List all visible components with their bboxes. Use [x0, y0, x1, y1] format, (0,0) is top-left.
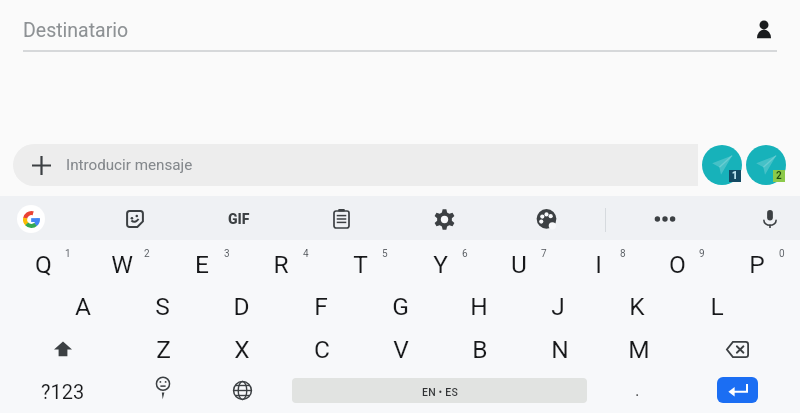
staticText: Z: [156, 335, 171, 364]
button[interactable]: EN • ES: [292, 378, 587, 403]
button[interactable]: GIF: [222, 207, 256, 231]
button[interactable]: Introducir mensaje: [13, 144, 698, 186]
button[interactable]: W: [96, 244, 148, 284]
button[interactable]: Voice input: [759, 207, 781, 231]
button[interactable]: ?123: [22, 372, 104, 410]
staticText: F: [314, 292, 328, 321]
button[interactable]: T: [334, 244, 386, 284]
staticText: H: [470, 292, 488, 321]
staticText: EN • ES: [422, 386, 458, 398]
button[interactable]: Google search: [17, 205, 45, 233]
button[interactable]: Y: [414, 244, 466, 284]
button[interactable]: R: [255, 244, 307, 284]
staticText: 0: [779, 248, 785, 260]
staticText: ?123: [41, 380, 85, 403]
button[interactable]: Clipboard: [330, 207, 352, 231]
button[interactable]: Choose contact: [748, 13, 780, 45]
button[interactable]: E: [176, 244, 228, 284]
staticText: 5: [382, 248, 388, 260]
staticText: 2: [776, 170, 782, 182]
button[interactable]: .: [607, 371, 667, 409]
button[interactable]: Settings: [433, 207, 455, 231]
button[interactable]: Z: [137, 329, 189, 369]
button[interactable]: J: [532, 286, 584, 326]
button[interactable]: U: [493, 244, 545, 284]
button[interactable]: Send with SIM 1: [702, 145, 742, 185]
staticText: L: [710, 292, 724, 321]
staticText: G: [392, 292, 409, 321]
button[interactable]: P: [731, 244, 783, 284]
button[interactable]: X: [216, 329, 268, 369]
staticText: R: [273, 250, 289, 279]
button[interactable]: K: [611, 286, 663, 326]
button[interactable]: L: [691, 286, 743, 326]
button[interactable]: O: [651, 244, 703, 284]
staticText: O: [669, 250, 686, 279]
staticText: 2: [144, 248, 150, 260]
staticText: Y: [433, 250, 448, 279]
staticText: Q: [35, 250, 52, 279]
staticText: X: [234, 335, 250, 364]
staticText: .: [635, 380, 640, 400]
button[interactable]: D: [215, 286, 267, 326]
button[interactable]: A: [57, 286, 109, 326]
staticText: S: [155, 292, 170, 321]
staticText: K: [629, 292, 645, 321]
button[interactable]: Theme: [535, 207, 557, 231]
button[interactable]: Q: [17, 244, 69, 284]
staticText: 1: [65, 248, 71, 260]
staticText: C: [314, 335, 330, 364]
button[interactable]: More options: [654, 207, 676, 231]
staticText: 8: [620, 248, 626, 260]
button[interactable]: C: [296, 329, 348, 369]
button[interactable]: Backspace: [697, 329, 777, 369]
button[interactable]: Emoji: [133, 371, 193, 409]
button[interactable]: B: [454, 329, 506, 369]
staticText: Introducir mensaje: [66, 156, 193, 174]
staticText: V: [393, 335, 409, 364]
button[interactable]: N: [534, 329, 586, 369]
button[interactable]: Enter: [717, 377, 758, 403]
staticText: 4: [303, 248, 309, 260]
staticText: B: [472, 335, 488, 364]
button[interactable]: F: [295, 286, 347, 326]
staticText: M: [628, 335, 650, 364]
button[interactable]: Send with SIM 2: [746, 145, 786, 185]
staticText: U: [511, 250, 527, 279]
staticText: 3: [224, 248, 230, 260]
staticText: T: [353, 250, 368, 279]
button[interactable]: G: [374, 286, 426, 326]
staticText: 6: [462, 248, 468, 260]
staticText: 7: [541, 248, 547, 260]
staticText: P: [749, 250, 765, 279]
button[interactable]: I: [572, 244, 624, 284]
staticText: GIF: [228, 211, 250, 227]
staticText: 1: [732, 170, 738, 182]
button[interactable]: Shift: [23, 329, 103, 369]
button[interactable]: Stickers: [124, 207, 146, 231]
staticText: 9: [699, 248, 705, 260]
button[interactable]: Change language: [212, 371, 272, 409]
button[interactable]: S: [136, 286, 188, 326]
staticText: J: [551, 292, 565, 321]
button[interactable]: H: [453, 286, 505, 326]
staticText: Destinatario: [23, 19, 129, 42]
staticText: A: [75, 292, 91, 321]
staticText: I: [595, 250, 602, 279]
button[interactable]: M: [613, 329, 665, 369]
staticText: D: [233, 292, 250, 321]
staticText: W: [111, 250, 133, 279]
button[interactable]: V: [375, 329, 427, 369]
staticText: E: [195, 250, 209, 279]
staticText: N: [551, 335, 569, 364]
